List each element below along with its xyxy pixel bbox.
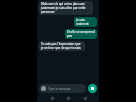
button[interactable]: Et elle se comprend pas xyxy=(65,29,97,39)
button[interactable]: Recents xyxy=(83,96,87,100)
staticText: Et elle se comprend pas xyxy=(67,30,95,38)
staticText: Mais une ch qui a rien plus une justemen… xyxy=(41,2,91,14)
button[interactable]: Send xyxy=(88,84,97,93)
staticText: Je suis vraiment xyxy=(76,18,95,26)
staticText: Tu vois pas l'impression que je ne leur … xyxy=(41,42,83,50)
staticText: Type a message xyxy=(48,87,71,91)
button[interactable]: Mais une ch qui a rien plus une justemen… xyxy=(39,1,93,15)
button[interactable]: Type a message xyxy=(39,84,86,93)
button[interactable]: Je suis vraiment xyxy=(74,17,97,27)
button[interactable]: Back xyxy=(50,96,54,100)
button[interactable]: Tu vois pas l'impression que je ne leur … xyxy=(39,41,85,51)
button[interactable]: Home xyxy=(66,96,70,100)
